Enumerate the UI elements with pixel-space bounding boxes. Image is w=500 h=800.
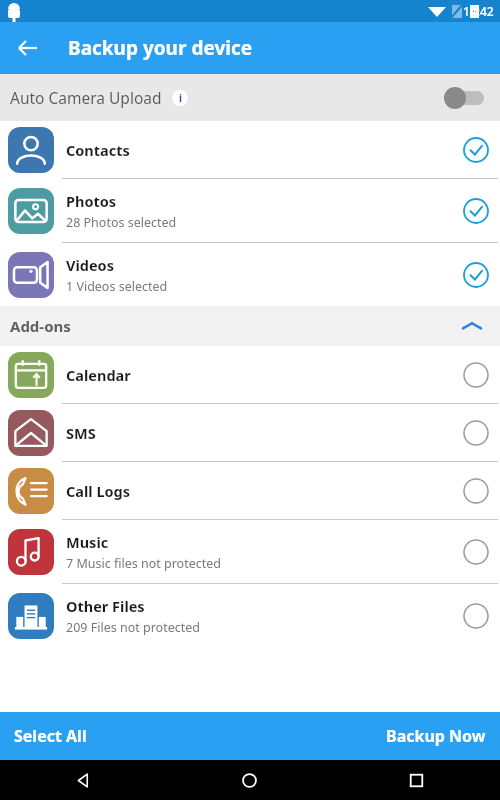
button[interactable]: Add-ons <box>0 306 500 346</box>
staticText: 1 Videos selected <box>66 278 168 295</box>
button[interactable]: Home <box>166 760 333 800</box>
staticText: SMS <box>66 423 96 443</box>
button[interactable]: Call Logs <box>0 462 500 519</box>
staticText: Select All <box>14 725 87 747</box>
staticText: Videos <box>66 255 114 275</box>
staticText: Auto Camera Upload <box>10 87 162 108</box>
button[interactable]: Back <box>0 760 166 800</box>
staticText: Contacts <box>66 140 130 160</box>
staticText: 14:42 <box>463 3 494 19</box>
button[interactable]: Auto Camera Upload <box>0 74 500 121</box>
button[interactable]: Other Files <box>0 584 500 647</box>
staticText: Backup Now <box>386 725 486 747</box>
button[interactable]: Music <box>0 520 500 583</box>
button[interactable]: Back <box>10 30 46 66</box>
button[interactable]: SMS <box>0 404 500 461</box>
staticText: Calendar <box>66 365 131 385</box>
staticText: i <box>179 91 182 105</box>
button[interactable]: Contacts <box>0 121 500 178</box>
staticText: 209 Files not protected <box>66 619 200 636</box>
button[interactable]: Backup Now <box>372 712 500 760</box>
staticText: Photos <box>66 191 117 211</box>
button[interactable]: Videos <box>0 243 500 306</box>
staticText: Call Logs <box>66 481 131 501</box>
staticText: 7 Music files not protected <box>66 555 221 572</box>
button[interactable]: Select All <box>0 712 101 760</box>
button[interactable]: Auto Camera Upload toggle <box>442 85 488 111</box>
button[interactable]: Calendar <box>0 346 500 403</box>
button[interactable]: Recents <box>333 760 500 800</box>
staticText: Add-ons <box>10 316 71 336</box>
staticText: Backup your device <box>68 35 253 61</box>
staticText: 28 Photos selected <box>66 214 177 231</box>
staticText: Music <box>66 532 109 552</box>
button[interactable]: Photos <box>0 179 500 242</box>
staticText: Other Files <box>66 596 145 616</box>
other: Collapse Add-ons <box>456 310 488 342</box>
